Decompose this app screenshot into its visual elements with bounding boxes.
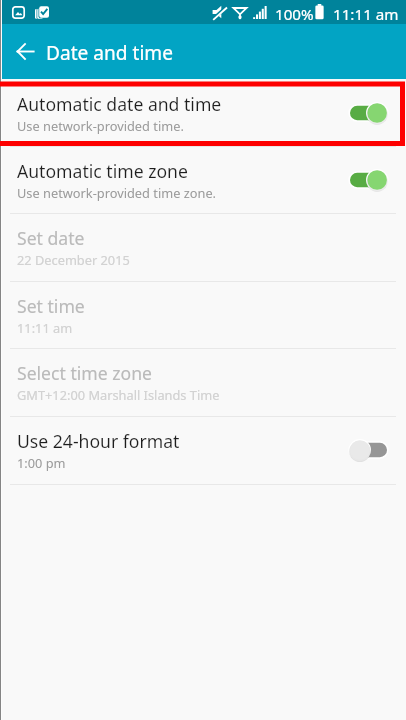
staticText: Use 24-hour format: [17, 429, 180, 453]
staticText: Use network-provided time zone.: [17, 184, 217, 201]
staticText: Set date: [17, 226, 85, 250]
button[interactable]: Set time: [0, 281, 406, 348]
button[interactable]: Navigate up: [5, 24, 45, 79]
button[interactable]: Set date: [0, 213, 406, 281]
staticText: Automatic time zone: [17, 159, 188, 183]
staticText: Select time zone: [17, 361, 152, 385]
button[interactable]: Automatic time zone: [0, 146, 406, 213]
button[interactable]: Use 24-hour format switch: [350, 428, 387, 472]
staticText: 1:00 pm: [17, 454, 66, 471]
button[interactable]: Select time zone: [0, 348, 406, 416]
staticText: Automatic date and time: [17, 92, 222, 116]
button[interactable]: Automatic date and time: [0, 79, 406, 146]
button[interactable]: Use 24-hour format: [0, 416, 406, 484]
staticText: 100%: [275, 4, 314, 25]
staticText: Set time: [17, 294, 85, 318]
staticText: GMT+12:00 Marshall Islands Time: [17, 386, 220, 403]
staticText: 22 December 2015: [17, 251, 130, 268]
staticText: Use network-provided time.: [17, 117, 184, 134]
staticText: 11:11 am: [17, 319, 73, 336]
button[interactable]: Automatic date and time switch: [350, 91, 387, 135]
button[interactable]: Automatic time zone switch: [350, 158, 387, 202]
staticText: Date and time: [46, 40, 173, 66]
staticText: 11:11 am: [333, 4, 399, 25]
